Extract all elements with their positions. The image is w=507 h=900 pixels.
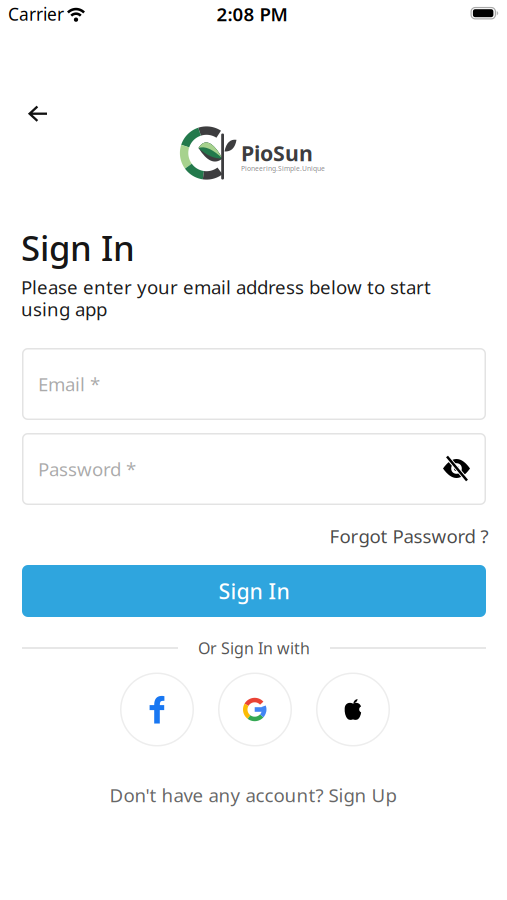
- button[interactable]: Sign Up: [328, 783, 396, 807]
- staticText: Or Sign In with: [198, 637, 310, 659]
- button[interactable]: Forgot Password ?: [329, 524, 488, 548]
- staticText: Sign In: [21, 224, 135, 270]
- staticText: Sign In: [218, 577, 289, 605]
- button[interactable]: Sign in with Facebook: [120, 672, 194, 746]
- button[interactable]: Sign In: [22, 565, 486, 617]
- button[interactable]: Back: [18, 96, 58, 132]
- staticText: Carrier: [8, 2, 64, 25]
- staticText: Pioneering.Simple.Unique: [241, 164, 325, 173]
- staticText: using app: [21, 297, 107, 321]
- staticText: 2:08 PM: [216, 2, 287, 26]
- staticText: PioSun: [241, 139, 313, 167]
- staticText: Forgot Password ?: [329, 524, 488, 548]
- button[interactable]: Sign in with Google: [218, 672, 292, 746]
- staticText: Please enter your email address below to…: [21, 275, 431, 299]
- staticText: Don't have any account?: [109, 783, 323, 807]
- staticText: Sign Up: [328, 783, 396, 807]
- button[interactable]: Sign in with Apple: [316, 672, 390, 746]
- button[interactable]: Show password: [434, 446, 478, 490]
- staticText: Email *: [38, 372, 100, 396]
- staticText: Password *: [38, 457, 136, 481]
